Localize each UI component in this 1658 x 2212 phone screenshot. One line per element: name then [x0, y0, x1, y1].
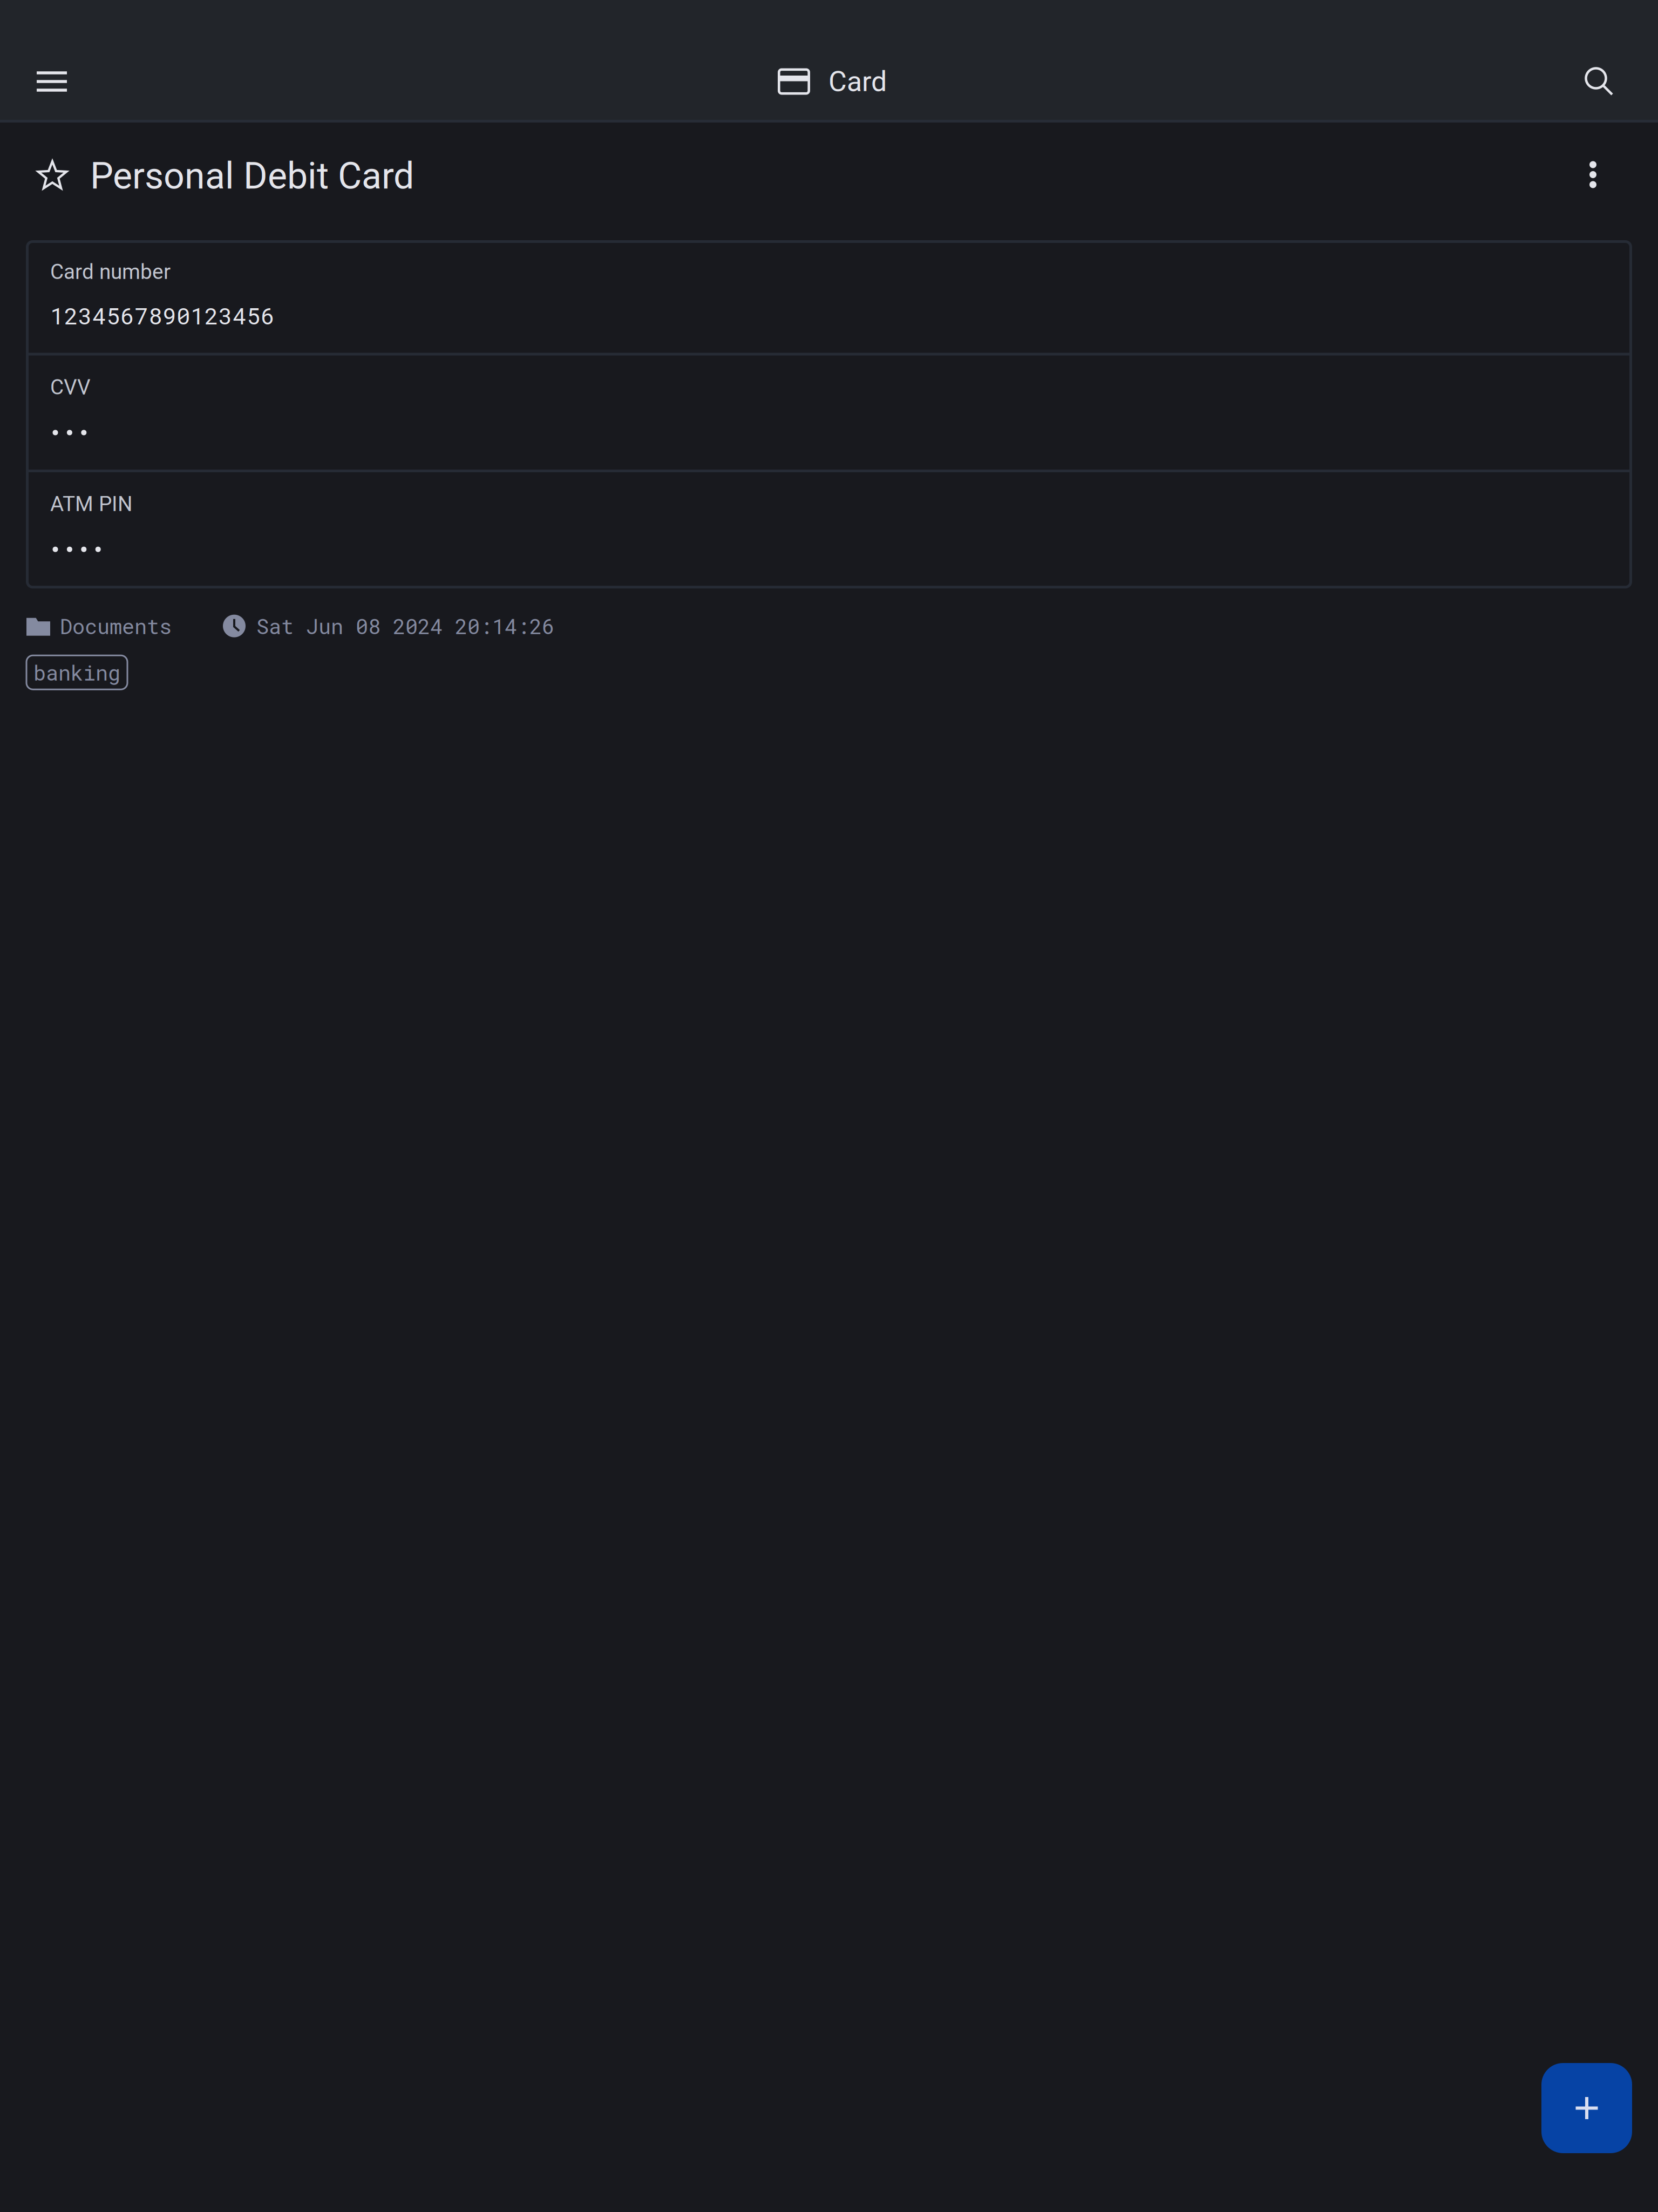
- staticText: CVV: [50, 375, 91, 399]
- button[interactable]: banking: [26, 655, 127, 689]
- staticText: Documents: [60, 612, 172, 640]
- staticText: ATM PIN: [50, 492, 133, 516]
- button[interactable]: More options: [1557, 141, 1658, 222]
- staticText: Card: [828, 65, 887, 98]
- staticText: banking: [33, 659, 120, 686]
- button[interactable]: Favourite: [0, 141, 79, 222]
- staticText: Sat Jun 08 2024 20:14:26: [256, 612, 554, 640]
- staticText: 1234567890123456: [50, 300, 275, 331]
- button[interactable]: Menu: [0, 22, 94, 141]
- button[interactable]: Search: [1558, 22, 1658, 141]
- staticText: Card number: [50, 260, 171, 284]
- staticText: Personal Debit Card: [90, 154, 414, 198]
- button[interactable]: Personal Debit Card: [79, 136, 414, 227]
- button[interactable]: Add item: [1541, 2063, 1632, 2153]
